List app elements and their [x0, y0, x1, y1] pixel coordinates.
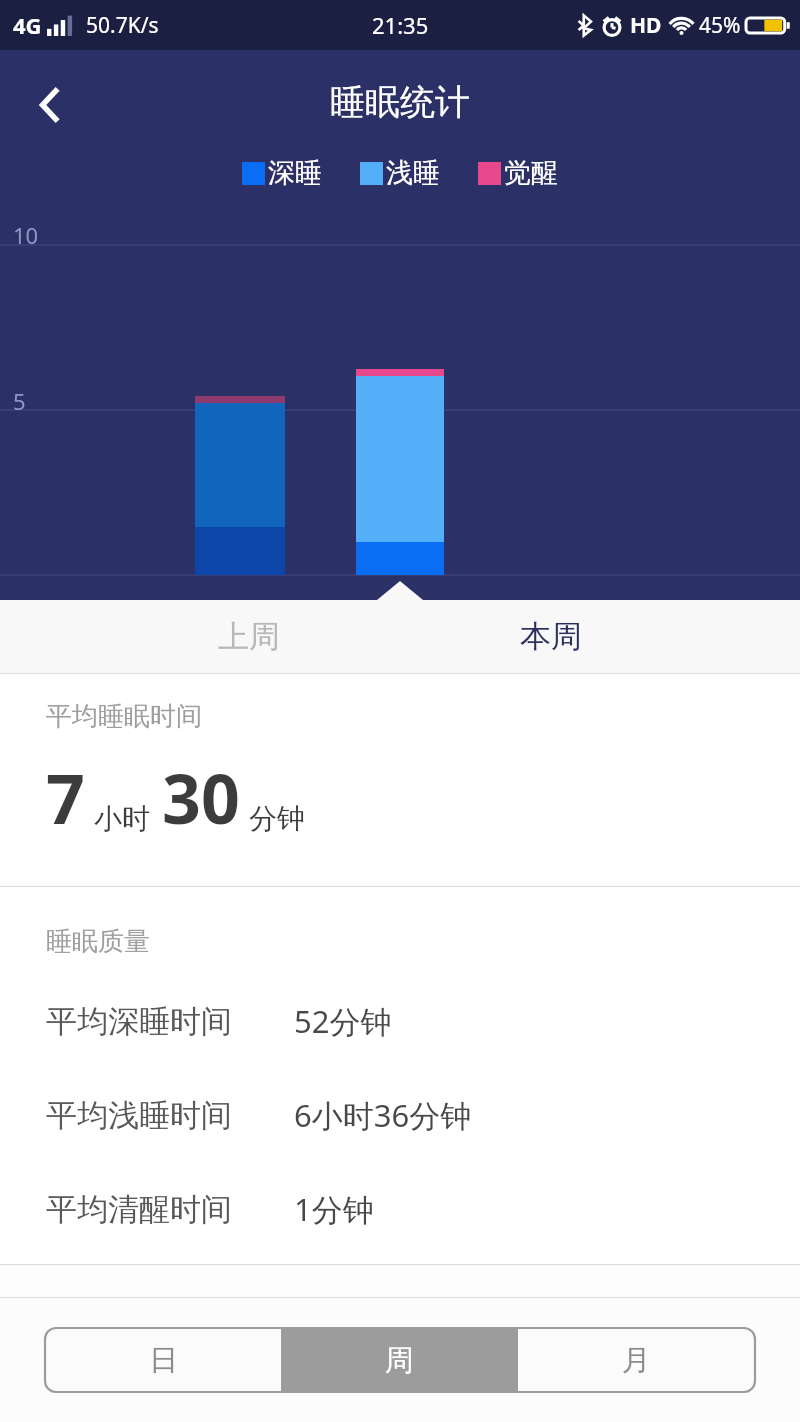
button[interactable]: 日	[45, 1328, 281, 1392]
button[interactable]: Back	[24, 76, 82, 134]
button[interactable]: 平均浅睡时间	[46, 1094, 800, 1136]
staticText: 本周	[520, 617, 582, 656]
staticText: 5	[13, 386, 26, 416]
staticText: 周	[385, 1342, 414, 1379]
staticText: 上周	[218, 617, 280, 656]
staticText: 平均清醒时间	[46, 1190, 232, 1229]
staticText: 21:35	[372, 10, 429, 40]
staticText: 日	[149, 1342, 178, 1379]
staticText: 6小时36分钟	[294, 1094, 472, 1136]
staticText: 30	[162, 751, 240, 844]
button[interactable]: 平均清醒时间	[46, 1188, 800, 1230]
staticText: 觉醒	[504, 156, 558, 190]
button[interactable]: 平均深睡时间	[46, 1000, 800, 1042]
staticText: 52分钟	[294, 1000, 392, 1042]
staticText: HD	[630, 11, 662, 40]
staticText: 小时	[94, 801, 150, 836]
staticText: 浅睡	[386, 156, 440, 190]
staticText: 平均浅睡时间	[46, 1096, 232, 1135]
staticText: 睡眠质量	[46, 925, 150, 958]
button[interactable]: 月	[518, 1328, 755, 1392]
staticText: 平均深睡时间	[46, 1002, 232, 1041]
staticText: 7	[46, 751, 85, 844]
staticText: 1分钟	[294, 1188, 374, 1230]
button[interactable]: 本周	[400, 600, 800, 673]
staticText: 分钟	[249, 801, 305, 836]
button[interactable]: 周	[281, 1328, 518, 1392]
staticText: 月	[622, 1342, 651, 1379]
staticText: 睡眠统计	[330, 80, 470, 124]
staticText: 深睡	[268, 156, 322, 190]
staticText: 4G	[13, 10, 42, 40]
staticText: 10	[13, 220, 39, 250]
staticText: 50.7K/s	[86, 11, 159, 40]
staticText: 平均睡眠时间	[46, 700, 202, 733]
staticText: 45%	[699, 11, 741, 40]
button[interactable]: 上周	[0, 600, 400, 673]
